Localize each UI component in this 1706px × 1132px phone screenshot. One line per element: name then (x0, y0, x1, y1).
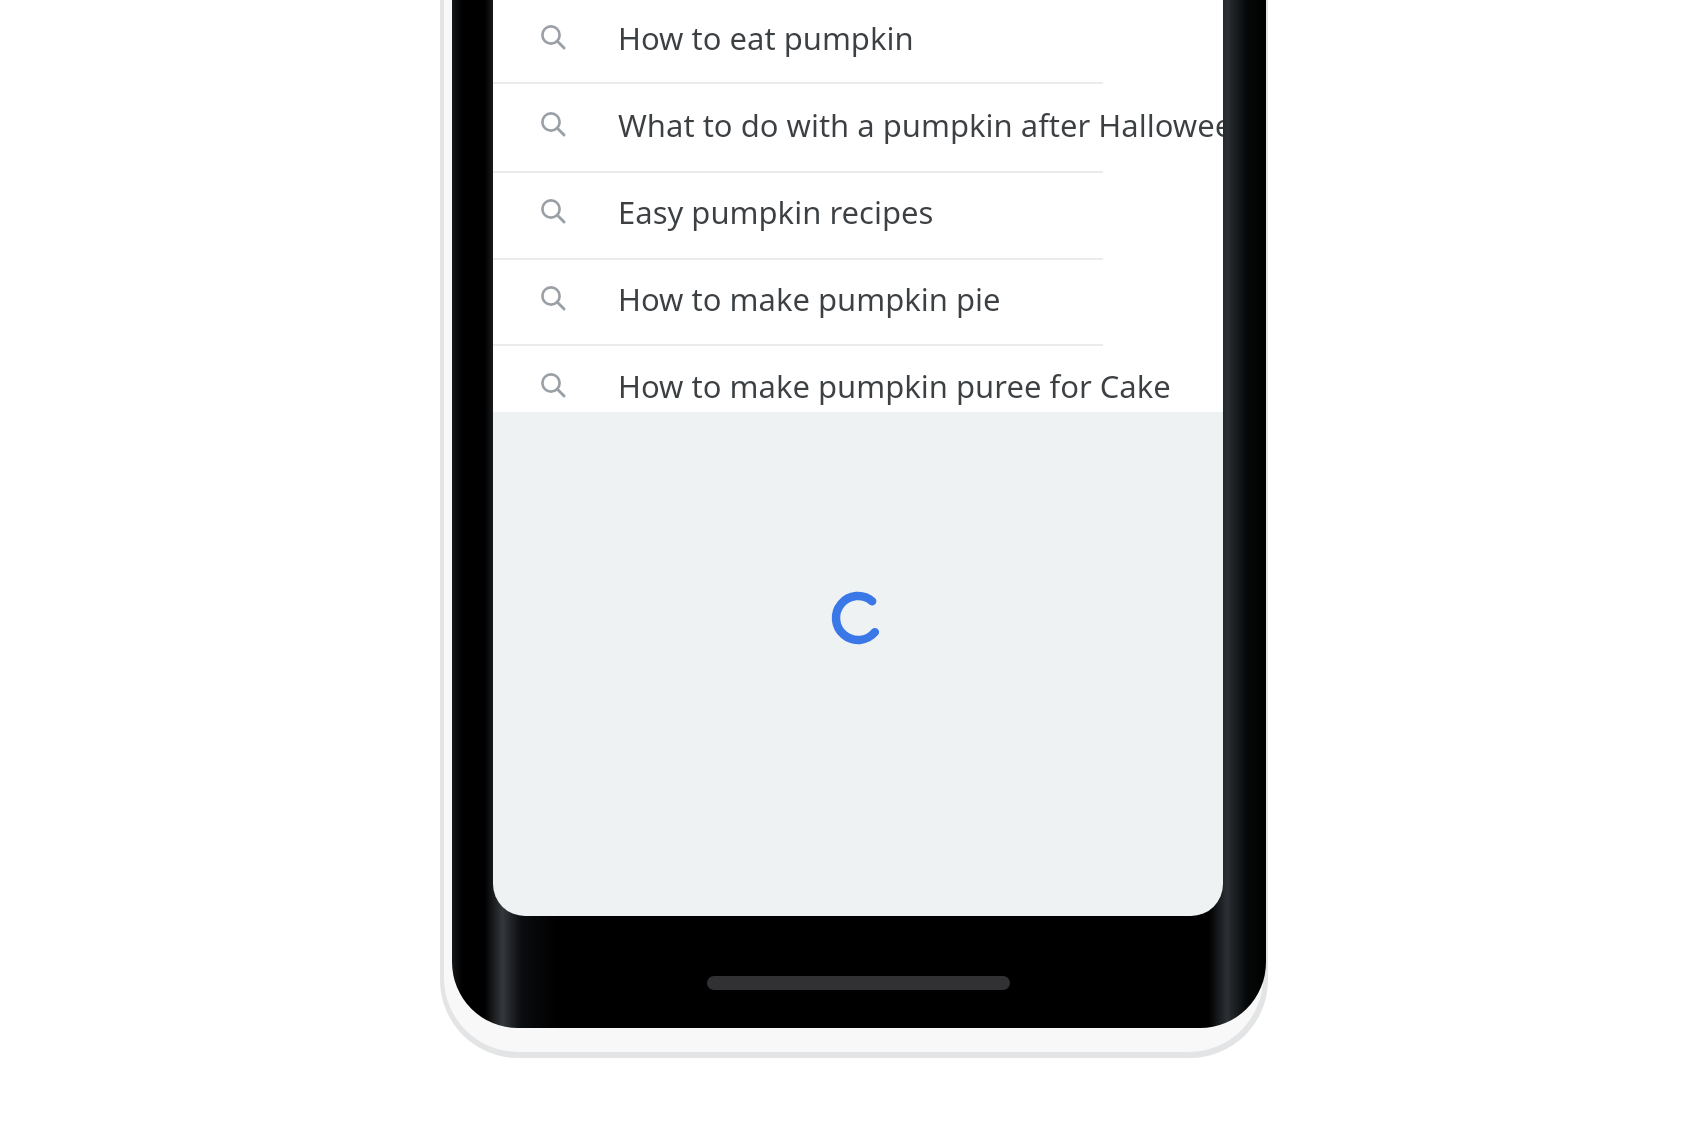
button[interactable]: Easy pumpkin recipes (493, 172, 1223, 259)
button[interactable]: How to eat pumpkin (493, 0, 1223, 83)
button[interactable]: How to make pumpkin puree for Cake (493, 345, 1223, 412)
button[interactable]: What to do with a pumpkin after Hallowee… (493, 83, 1223, 172)
button[interactable]: How to make pumpkin pie (493, 259, 1223, 345)
